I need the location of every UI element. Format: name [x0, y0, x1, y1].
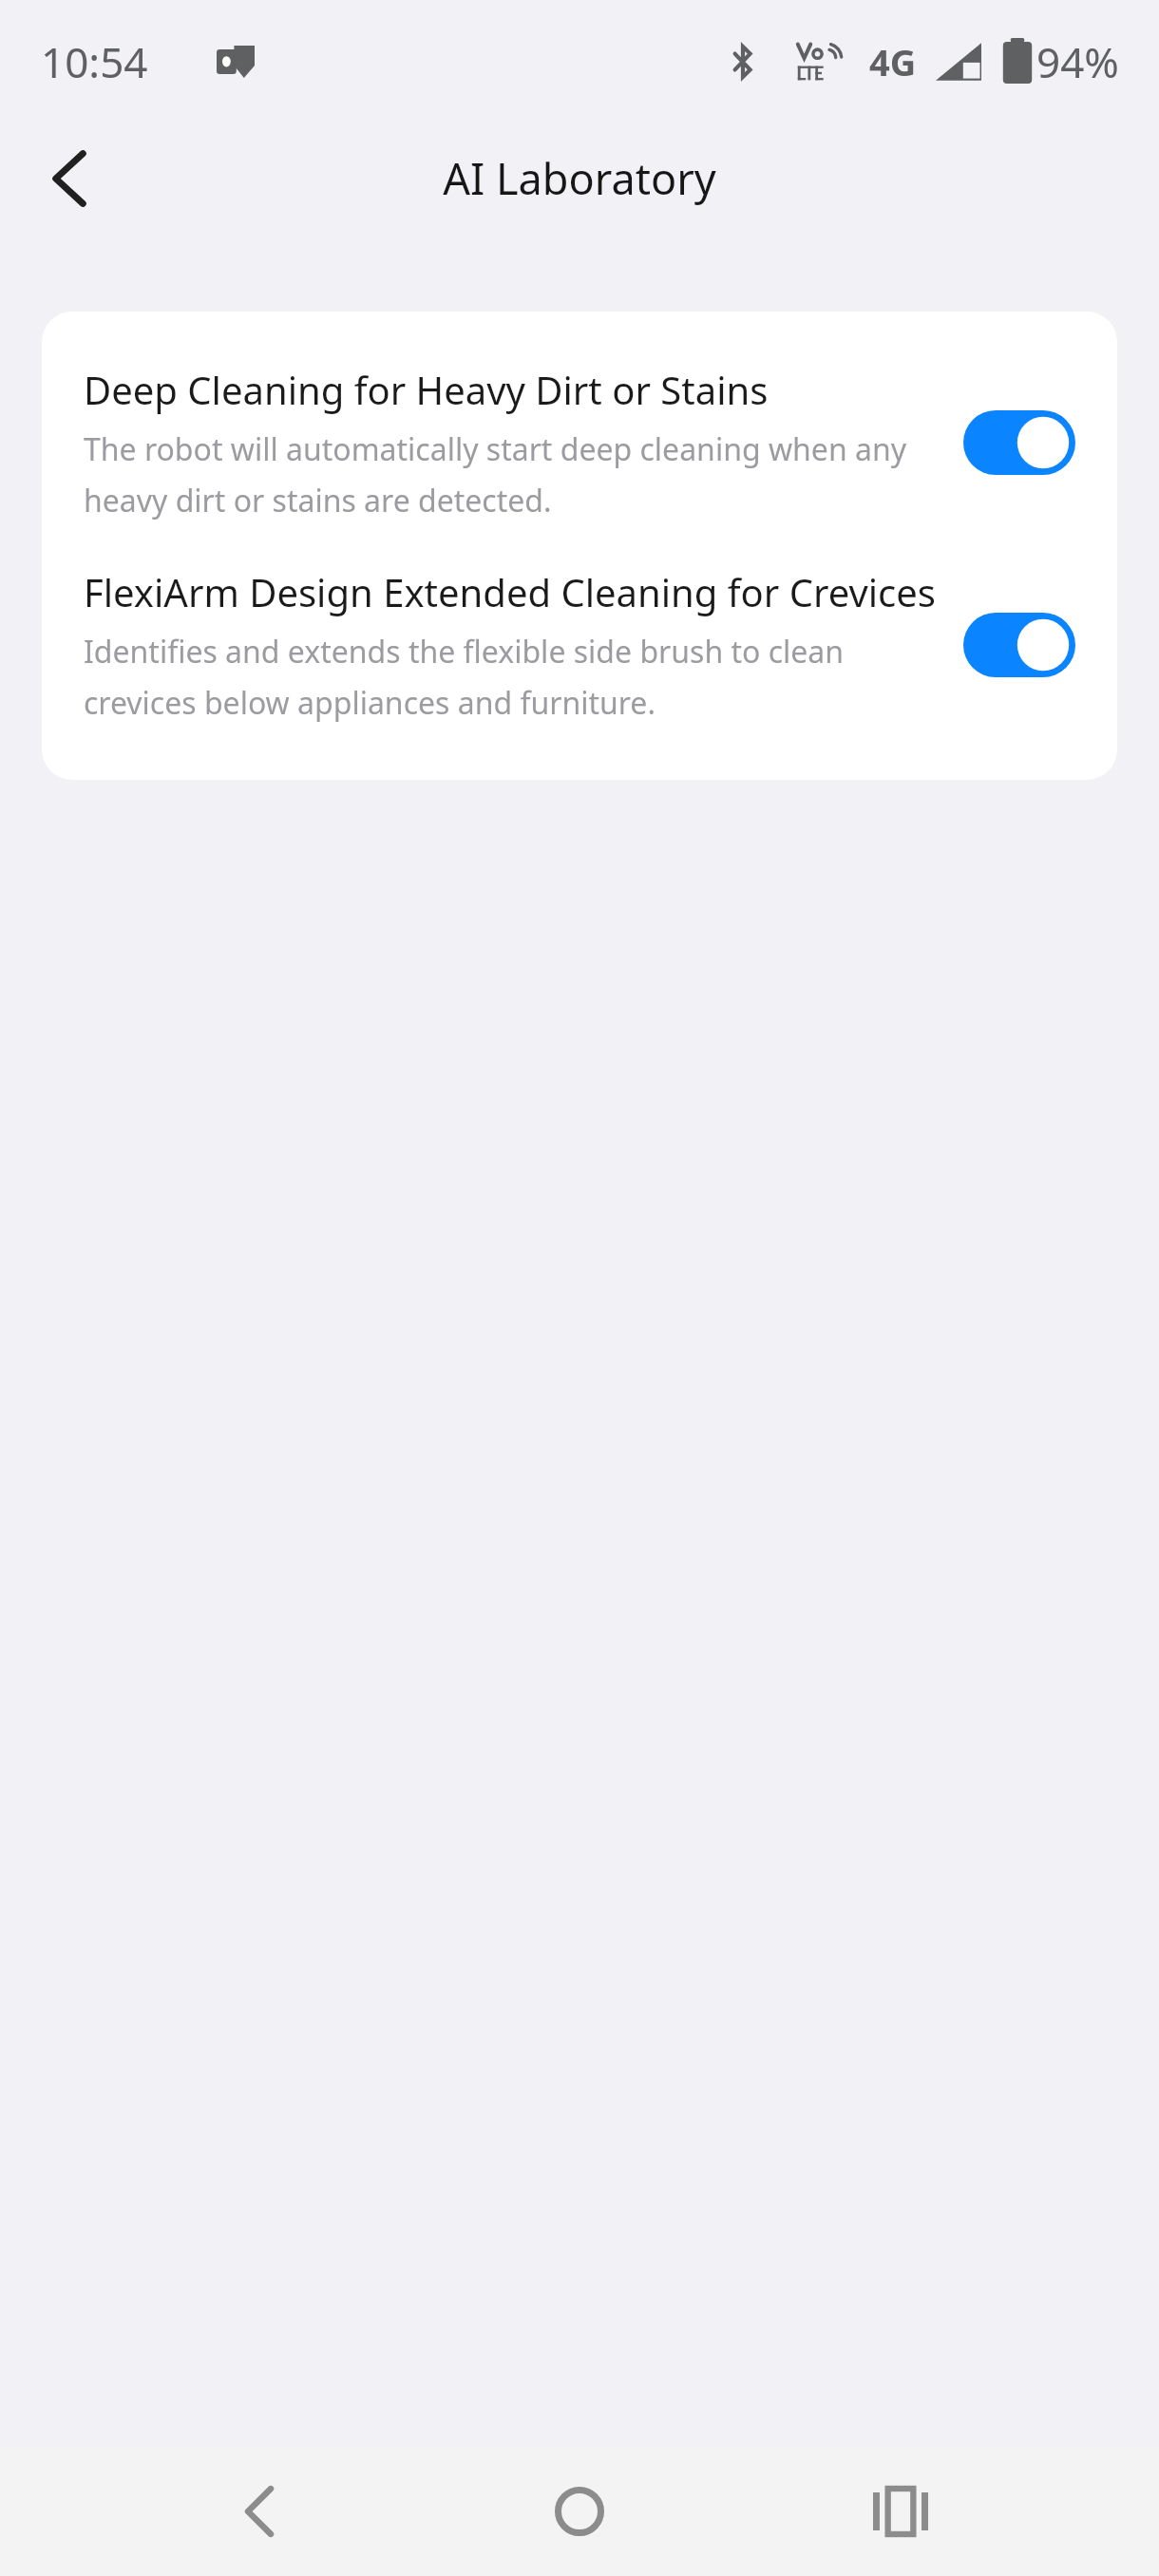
button[interactable]: Deep Cleaning for Heavy Dirt or Stains — [42, 312, 1117, 543]
staticText: 94% — [1036, 33, 1119, 90]
button[interactable]: Back — [198, 2450, 321, 2573]
button[interactable]: Recent apps — [839, 2450, 962, 2573]
button[interactable]: Home — [518, 2450, 641, 2573]
staticText: 10:54 — [41, 33, 148, 90]
button[interactable]: Toggle on — [963, 410, 1075, 475]
staticText: The robot will automatically start deep … — [84, 428, 939, 521]
staticText: FlexiArm Design Extended Cleaning for Cr… — [84, 566, 936, 617]
staticText: Identifies and extends the flexible side… — [84, 631, 939, 723]
button[interactable]: Toggle on — [963, 613, 1075, 677]
button[interactable]: Back — [21, 130, 118, 227]
staticText: AI Laboratory — [443, 149, 716, 207]
staticText: 4G — [869, 37, 917, 86]
staticText: Deep Cleaning for Heavy Dirt or Stains — [84, 364, 769, 415]
button[interactable]: FlexiArm Design Extended Cleaning for Cr… — [42, 543, 1117, 780]
